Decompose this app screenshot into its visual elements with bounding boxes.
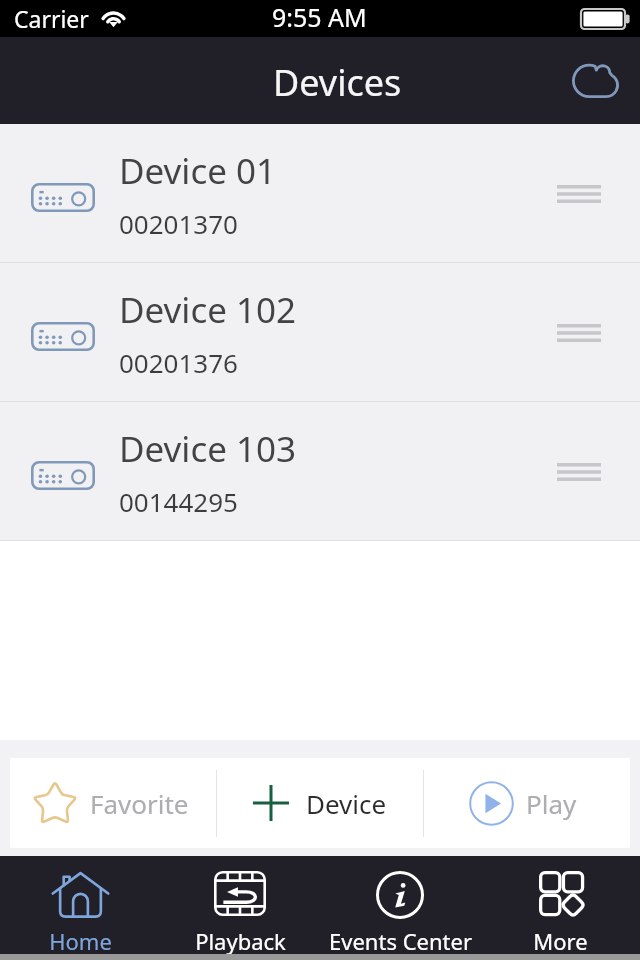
- staticText: Device 103: [119, 425, 297, 473]
- button[interactable]: Device 102: [0, 263, 640, 401]
- button[interactable]: More: [480, 856, 640, 954]
- button[interactable]: Cloud: [564, 54, 626, 108]
- staticText: Device: [306, 786, 387, 821]
- staticText: Carrier: [14, 3, 89, 34]
- button[interactable]: Events Center: [320, 856, 480, 954]
- staticText: 00144295: [119, 484, 238, 519]
- button[interactable]: Device 103: [0, 402, 640, 540]
- button[interactable]: Device: [215, 758, 421, 848]
- button[interactable]: Reorder: [517, 263, 640, 401]
- staticText: 00201370: [119, 206, 238, 241]
- button[interactable]: Play: [420, 758, 626, 848]
- staticText: Home: [49, 926, 112, 954]
- staticText: More: [533, 926, 588, 954]
- staticText: Devices: [273, 58, 402, 107]
- button[interactable]: Device 01: [0, 124, 640, 262]
- staticText: Device 102: [119, 286, 297, 334]
- staticText: 9:55 AM: [272, 0, 367, 34]
- button[interactable]: Playback: [160, 856, 320, 954]
- button[interactable]: Reorder: [517, 402, 640, 540]
- button[interactable]: Reorder: [517, 124, 640, 262]
- staticText: Device 01: [119, 147, 277, 195]
- staticText: Events Center: [329, 926, 472, 954]
- staticText: Favorite: [90, 786, 189, 821]
- button[interactable]: Home: [0, 856, 160, 954]
- staticText: 00201376: [119, 345, 238, 380]
- staticText: Play: [526, 786, 577, 821]
- staticText: Playback: [195, 926, 286, 954]
- button[interactable]: Favorite: [10, 758, 212, 848]
